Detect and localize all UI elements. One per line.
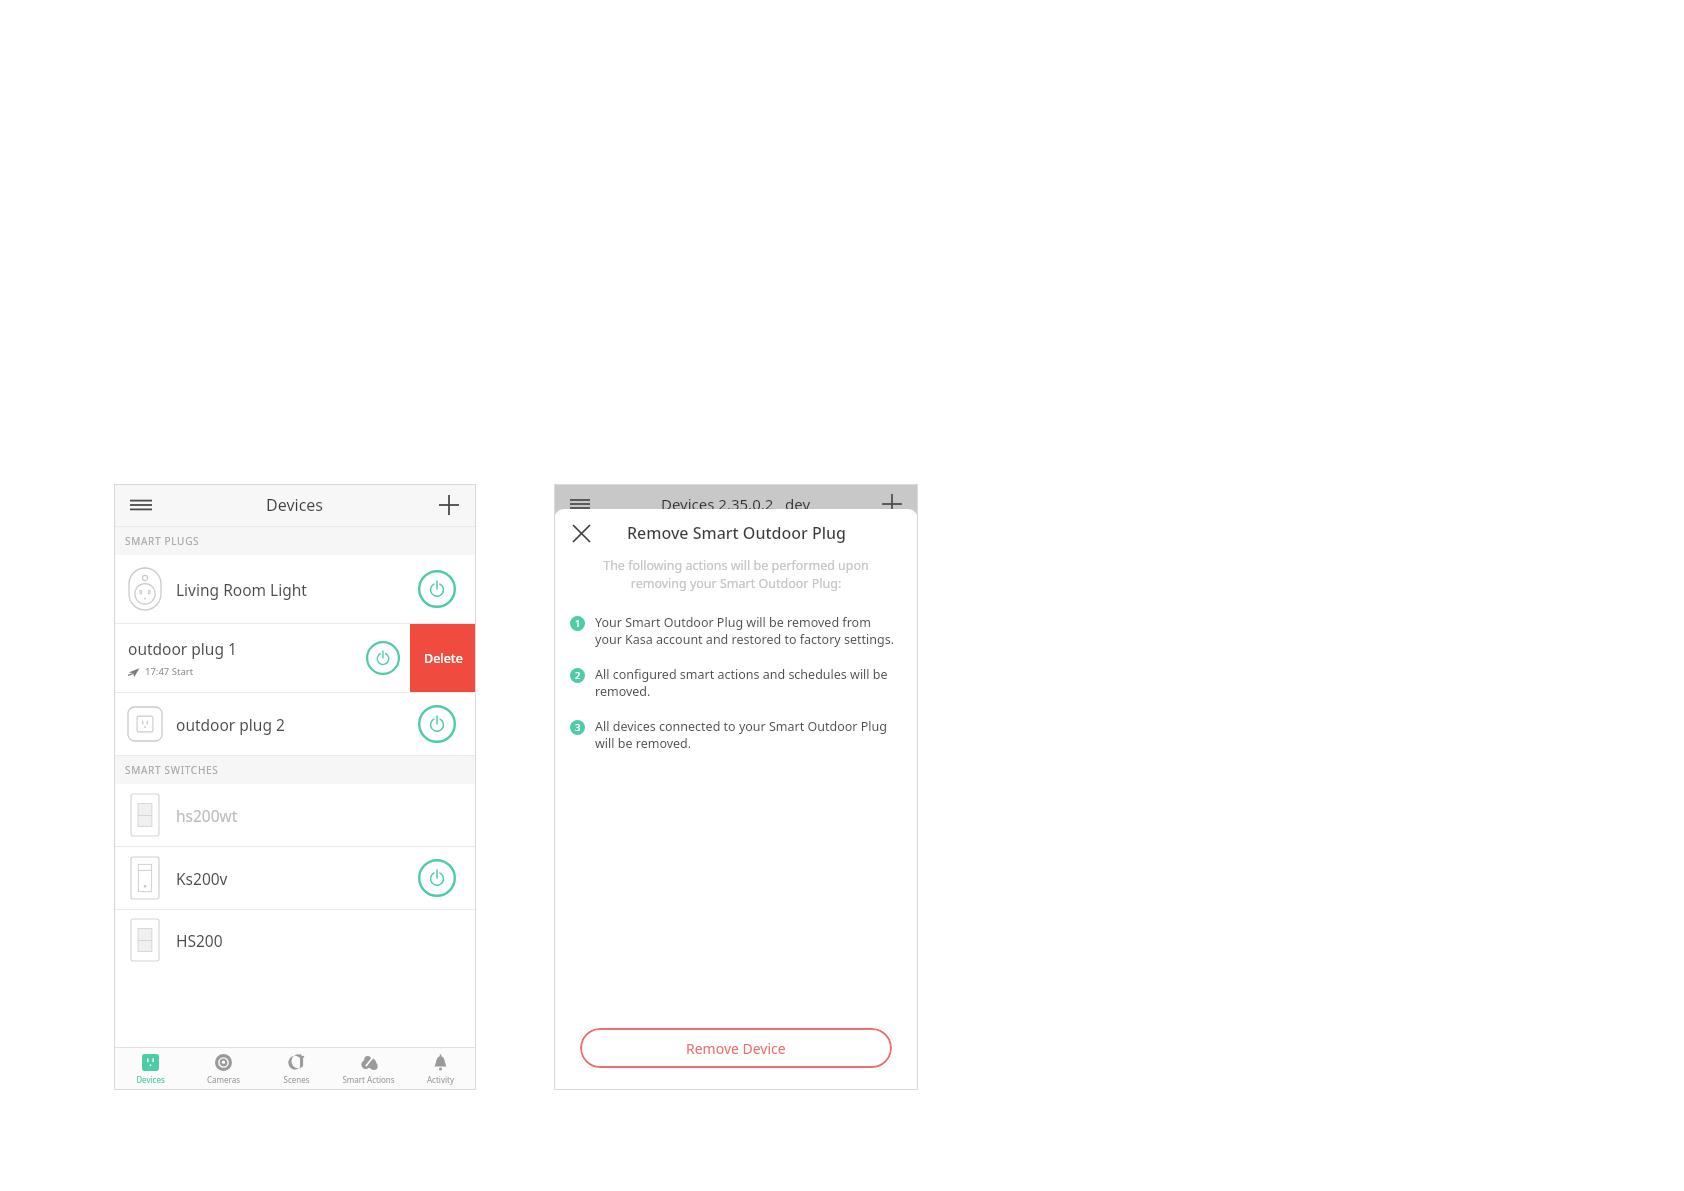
button[interactable]: HS200 [114, 910, 476, 970]
staticText: Devices [136, 1074, 165, 1085]
button[interactable]: Power toggle [418, 570, 456, 608]
button[interactable]: Power toggle [366, 641, 400, 675]
button[interactable]: hs200wt [114, 784, 476, 846]
staticText: hs200wt [176, 805, 418, 826]
staticText: HS200 [176, 930, 476, 951]
staticText: The following actions will be performed … [584, 557, 888, 592]
staticText: Cameras [207, 1074, 240, 1085]
staticText: All devices connected to your Smart Outd… [595, 718, 896, 752]
button[interactable]: Close [566, 518, 596, 548]
button[interactable]: Ks200v [114, 847, 476, 909]
button[interactable]: Scenes [260, 1048, 332, 1090]
button[interactable]: outdoor plug 2 [114, 693, 476, 755]
staticText: 1 [575, 617, 581, 630]
button[interactable]: Activity [404, 1048, 476, 1090]
staticText: Scenes [283, 1074, 310, 1085]
staticText: Activity [427, 1074, 454, 1085]
button[interactable]: Cameras [187, 1048, 260, 1090]
button[interactable]: Add device [432, 488, 466, 522]
staticText: Delete [424, 650, 463, 667]
button[interactable]: Menu [124, 488, 158, 522]
staticText: outdoor plug 2 [176, 714, 418, 735]
staticText: SMART PLUGS [125, 534, 200, 548]
button[interactable]: Living Room Light [114, 555, 476, 623]
staticText: 2 [575, 669, 581, 682]
staticText: Living Room Light [176, 579, 418, 600]
staticText: outdoor plug 1 [128, 638, 237, 659]
button[interactable]: Delete [410, 624, 476, 692]
button[interactable]: Power toggle [418, 705, 456, 743]
staticText: Ks200v [176, 868, 418, 889]
staticText: SMART SWITCHES [125, 763, 219, 777]
staticText: Devices [266, 494, 324, 516]
staticText: Devices 2.35.0.2 dev [661, 494, 811, 514]
button[interactable]: Devices [114, 1048, 187, 1090]
button[interactable]: Power toggle [418, 859, 456, 897]
staticText: 3 [575, 721, 581, 734]
button[interactable]: Smart Actions [332, 1048, 404, 1090]
staticText: Smart Actions [342, 1074, 395, 1085]
staticText: Remove Smart Outdoor Plug [627, 522, 846, 544]
staticText: Remove Device [686, 1039, 786, 1058]
button[interactable]: outdoor plug 1 [114, 624, 410, 692]
staticText: Your Smart Outdoor Plug will be removed … [595, 614, 896, 648]
button[interactable]: Remove Device [580, 1028, 892, 1068]
staticText: All configured smart actions and schedul… [595, 666, 896, 700]
staticText: 17:47 Start [145, 665, 194, 678]
